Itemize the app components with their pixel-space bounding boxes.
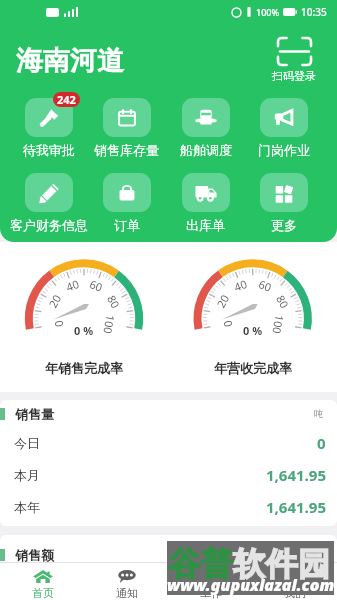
- staticText: 软件园: [233, 544, 331, 584]
- button[interactable]: 更多: [244, 173, 323, 233]
- staticText: 订单: [114, 217, 140, 233]
- staticText: 销售额: [15, 547, 54, 563]
- button[interactable]: 今日: [0, 427, 337, 459]
- staticText: 工作: [200, 586, 222, 600]
- staticText: 海南河道: [16, 44, 124, 78]
- button[interactable]: 本年: [0, 491, 337, 523]
- button[interactable]: 出库单: [166, 173, 245, 233]
- button[interactable]: 订单: [87, 173, 166, 233]
- button[interactable]: 首页: [0, 564, 85, 600]
- staticText: 船舶调度: [180, 142, 232, 158]
- button[interactable]: 扫码登录: [272, 38, 316, 83]
- staticText: 今日: [14, 435, 40, 451]
- staticText: 客户财务信息: [10, 217, 88, 233]
- staticText: 年营收完成率: [214, 360, 292, 376]
- staticText: 0: [317, 433, 326, 453]
- staticText: 本月: [14, 467, 40, 483]
- staticText: 20: [213, 291, 232, 310]
- staticText: 出库单: [186, 217, 225, 233]
- staticText: 100: [269, 314, 287, 335]
- staticText: 10:35: [301, 5, 327, 19]
- button[interactable]: 销售库存量: [87, 98, 166, 158]
- staticText: www.gupuxlazal.com: [167, 574, 334, 596]
- button[interactable]: 客户财务信息: [9, 173, 88, 233]
- staticText: 扫码登录: [272, 69, 316, 83]
- staticText: 80: [273, 292, 292, 311]
- button[interactable]: 船舶调度: [166, 98, 245, 158]
- button[interactable]: 242: [9, 98, 88, 158]
- staticText: 更多: [271, 217, 297, 233]
- staticText: 0 %: [74, 323, 94, 338]
- staticText: 待我审批: [23, 142, 75, 158]
- staticText: 100: [100, 314, 118, 335]
- staticText: 吨: [314, 408, 323, 419]
- staticText: 我的: [284, 586, 306, 600]
- staticText: 销售量: [15, 406, 54, 422]
- staticText: 销售库存量: [94, 142, 159, 158]
- staticText: 本年: [14, 499, 40, 515]
- staticText: 0: [219, 318, 235, 328]
- staticText: 0: [50, 318, 66, 328]
- button[interactable]: 通知: [85, 564, 169, 600]
- staticText: 100%: [256, 6, 280, 18]
- staticText: 60: [88, 276, 105, 295]
- staticText: 20: [45, 291, 64, 310]
- button[interactable]: 我的: [253, 564, 337, 600]
- button[interactable]: 工作: [169, 564, 253, 600]
- staticText: 1,641.95: [266, 465, 326, 485]
- button[interactable]: 门岗作业: [244, 98, 323, 158]
- staticText: 年销售完成率: [45, 360, 123, 376]
- staticText: 242: [57, 92, 76, 107]
- staticText: 1,641.95: [266, 497, 326, 517]
- staticText: 60: [257, 276, 274, 295]
- staticText: 门岗作业: [258, 142, 310, 158]
- staticText: 通知: [116, 586, 138, 600]
- staticText: 40: [232, 276, 249, 295]
- staticText: 首页: [32, 586, 54, 600]
- button[interactable]: 本月: [0, 459, 337, 491]
- staticText: 80: [104, 292, 123, 311]
- staticText: 0 %: [243, 323, 263, 338]
- staticText: 谷普: [168, 544, 233, 584]
- staticText: 40: [64, 276, 81, 295]
